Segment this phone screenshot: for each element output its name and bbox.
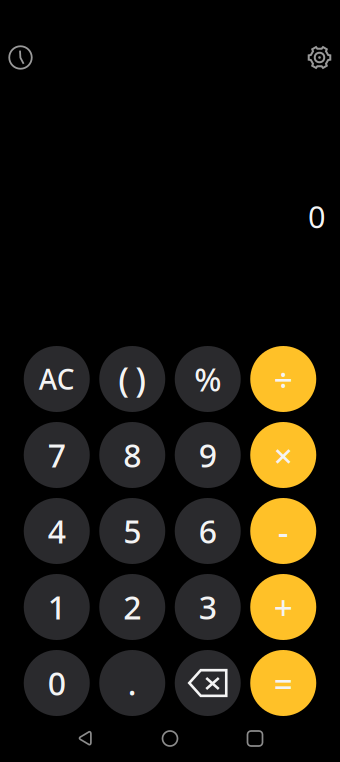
button[interactable]: 5 bbox=[99, 498, 165, 564]
staticText: 5 bbox=[123, 510, 141, 552]
button[interactable]: 4 bbox=[24, 498, 90, 564]
staticText: 4 bbox=[48, 510, 66, 552]
staticText: . bbox=[128, 662, 137, 704]
button[interactable]: Settings bbox=[297, 35, 340, 80]
button[interactable]: ( ) bbox=[99, 346, 165, 412]
staticText: 6 bbox=[199, 510, 217, 552]
staticText: = bbox=[274, 661, 293, 705]
staticText: - bbox=[278, 509, 289, 553]
staticText: AC bbox=[39, 360, 75, 398]
button[interactable]: 9 bbox=[175, 422, 241, 488]
button[interactable]: - bbox=[250, 498, 316, 564]
button[interactable]: % bbox=[175, 346, 241, 412]
staticText: 9 bbox=[199, 434, 217, 476]
button[interactable]: Back bbox=[42, 724, 127, 752]
staticText: 3 bbox=[199, 586, 217, 628]
staticText: 7 bbox=[48, 434, 66, 476]
button[interactable]: AC bbox=[24, 346, 90, 412]
button[interactable]: History bbox=[0, 35, 43, 80]
staticText: 8 bbox=[123, 434, 141, 476]
staticText: 0 bbox=[308, 196, 326, 237]
staticText: ÷ bbox=[274, 357, 293, 401]
staticText: × bbox=[274, 433, 293, 477]
button[interactable]: 7 bbox=[24, 422, 90, 488]
button[interactable]: Recents bbox=[212, 724, 297, 752]
button[interactable]: Delete bbox=[175, 650, 241, 716]
button[interactable]: + bbox=[250, 574, 316, 640]
staticText: + bbox=[274, 585, 293, 629]
button[interactable]: = bbox=[250, 650, 316, 716]
button[interactable]: . bbox=[99, 650, 165, 716]
button[interactable]: 0 bbox=[24, 650, 90, 716]
button[interactable]: 3 bbox=[175, 574, 241, 640]
staticText: % bbox=[194, 358, 221, 400]
button[interactable]: ÷ bbox=[250, 346, 316, 412]
button[interactable]: Home bbox=[127, 724, 212, 752]
staticText: 0 bbox=[48, 662, 66, 704]
button[interactable]: × bbox=[250, 422, 316, 488]
button[interactable]: 6 bbox=[175, 498, 241, 564]
button[interactable]: 8 bbox=[99, 422, 165, 488]
button[interactable]: 2 bbox=[99, 574, 165, 640]
staticText: 1 bbox=[48, 586, 66, 628]
button[interactable]: 1 bbox=[24, 574, 90, 640]
staticText: ( ) bbox=[118, 356, 146, 402]
staticText: 2 bbox=[123, 586, 141, 628]
